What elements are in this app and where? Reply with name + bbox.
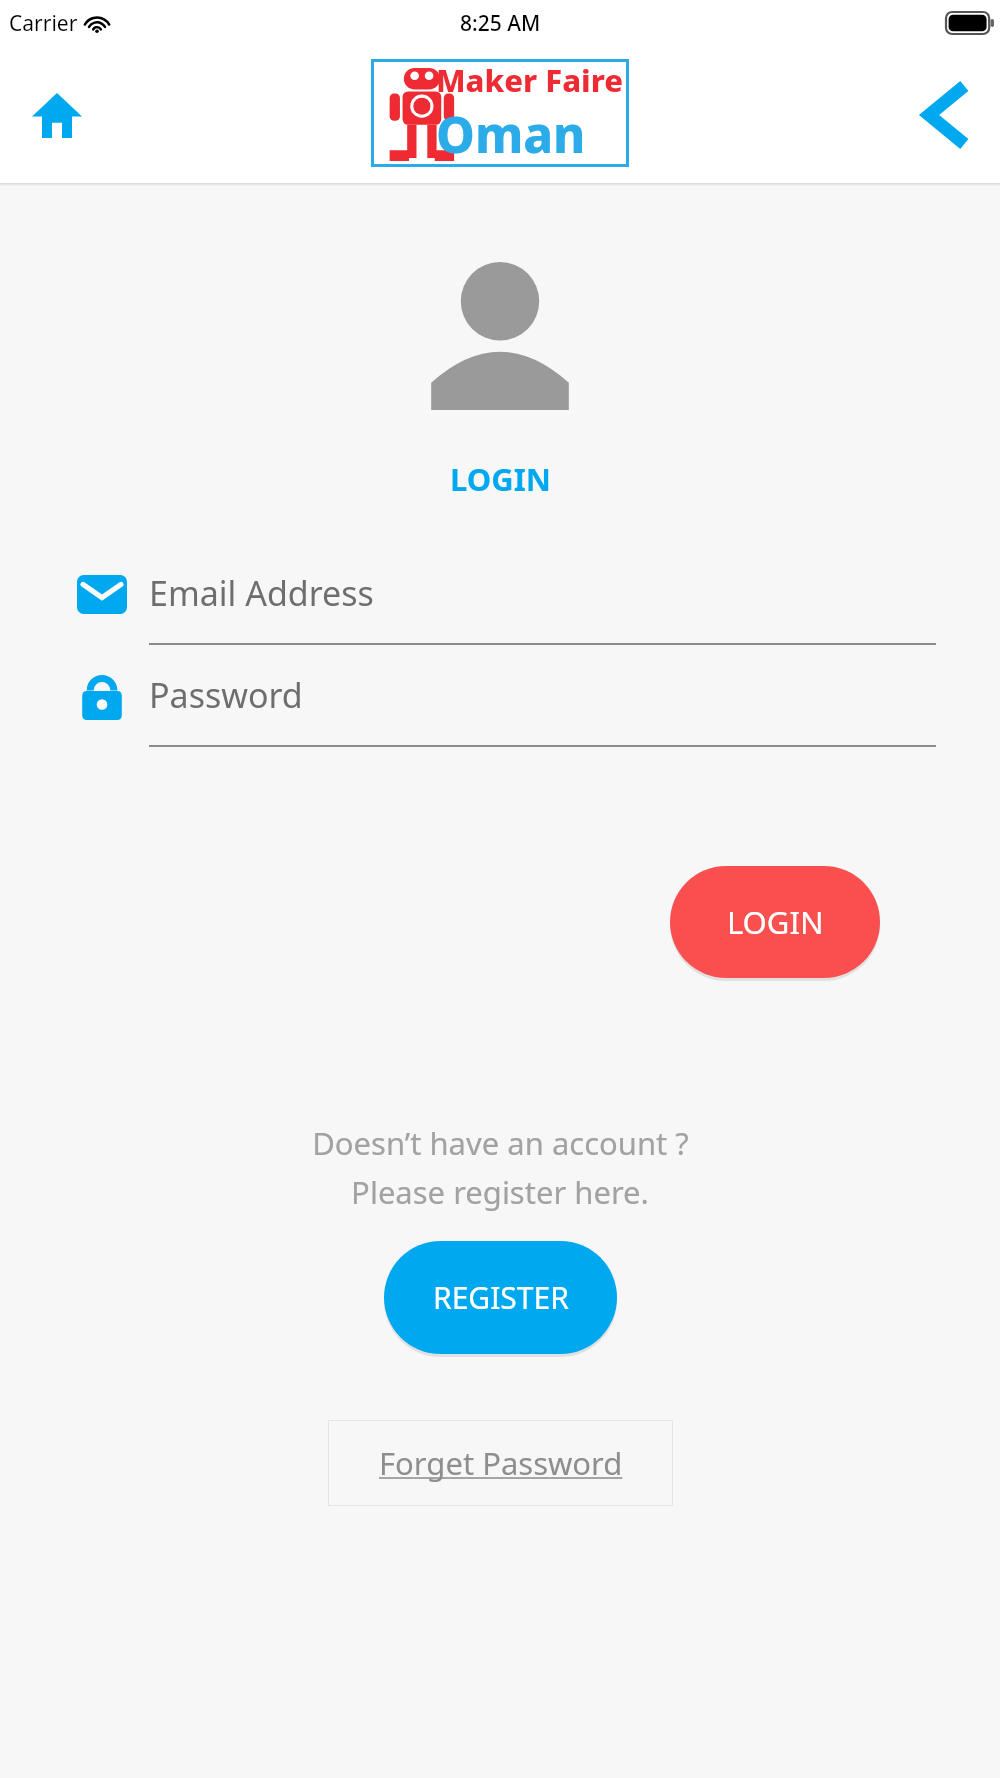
staticText: Password [149,672,303,718]
button[interactable]: Back [910,80,980,150]
staticText: Email Address [149,570,374,616]
staticText: Forget Password [379,1442,623,1484]
button[interactable]: Home [22,80,92,150]
staticText: Please register here. [351,1171,649,1213]
staticText: REGISTER [433,1277,569,1318]
staticText: 8:25 AM [460,9,541,38]
staticText: Carrier [9,9,78,38]
button[interactable]: LOGIN [670,866,880,978]
staticText: Doesn’t have an account ? [312,1122,689,1164]
button[interactable]: LOGIN [450,458,551,500]
button[interactable]: REGISTER [384,1241,617,1354]
staticText: Oman [436,101,586,167]
button[interactable]: Maker Faire [371,59,629,167]
staticText: LOGIN [727,901,824,943]
button[interactable]: Forget Password [328,1420,673,1506]
staticText: Maker Faire [436,59,624,101]
